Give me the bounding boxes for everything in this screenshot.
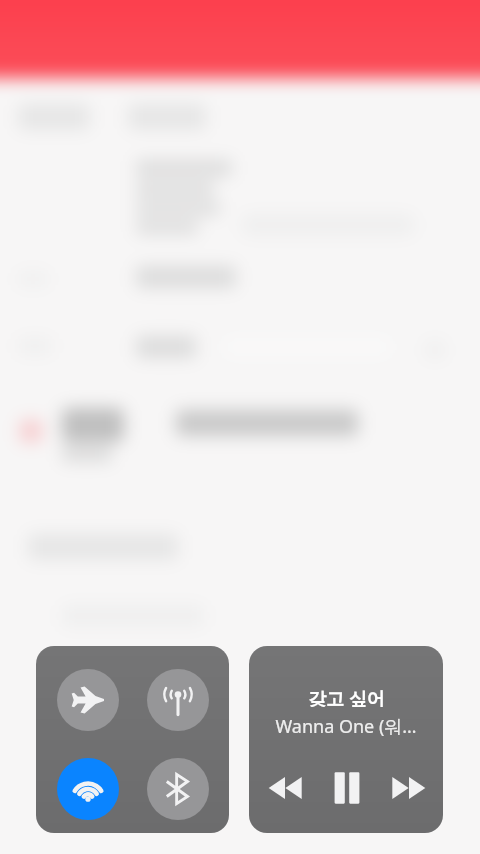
button[interactable]: Wi-Fi (57, 758, 119, 820)
button[interactable]: 갖고 싶어 (249, 646, 443, 833)
button[interactable]: Pause (323, 764, 371, 812)
button[interactable]: Bluetooth (147, 758, 209, 820)
button[interactable]: Airplane mode (57, 669, 119, 731)
button[interactable]: Cellular data (147, 669, 209, 731)
button[interactable]: Next track (385, 764, 433, 812)
staticText: 갖고 싶어 (308, 686, 385, 711)
button[interactable]: Previous track (261, 764, 309, 812)
staticText: Wanna One (워… (275, 714, 417, 739)
